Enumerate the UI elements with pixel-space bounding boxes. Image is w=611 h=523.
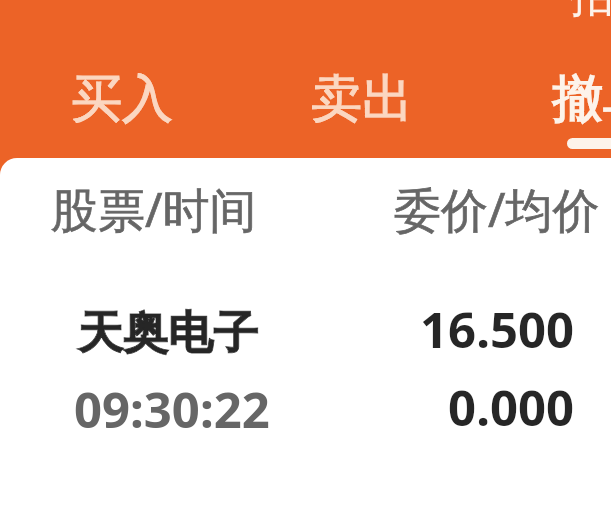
- staticText: 16.500: [250, 296, 574, 363]
- staticText: 卖出: [242, 67, 482, 131]
- staticText: 买入: [2, 67, 242, 131]
- staticText: 卖出: [242, 67, 482, 131]
- staticText: 撤单: [483, 67, 611, 131]
- button[interactable]: 卖出: [242, 52, 482, 160]
- staticText: 买入: [2, 67, 242, 131]
- staticText: 股票/时间: [51, 177, 257, 241]
- staticText: 委价/均价: [394, 177, 600, 241]
- staticText: 天奥电子: [78, 305, 258, 362]
- staticText: 09:30:22: [74, 376, 270, 443]
- button[interactable]: 买入: [2, 52, 242, 160]
- staticText: 股票/时间: [51, 177, 257, 241]
- button[interactable]: 天奥电子: [0, 293, 611, 423]
- staticText: 撤单: [483, 67, 611, 131]
- staticText: 天奥电子: [78, 305, 258, 362]
- button[interactable]: 撤单: [483, 52, 611, 160]
- staticText: 委价/均价: [394, 177, 600, 241]
- other: 招商: [570, 0, 611, 24]
- staticText: 招: [570, 0, 611, 24]
- staticText: 0.000: [250, 374, 574, 441]
